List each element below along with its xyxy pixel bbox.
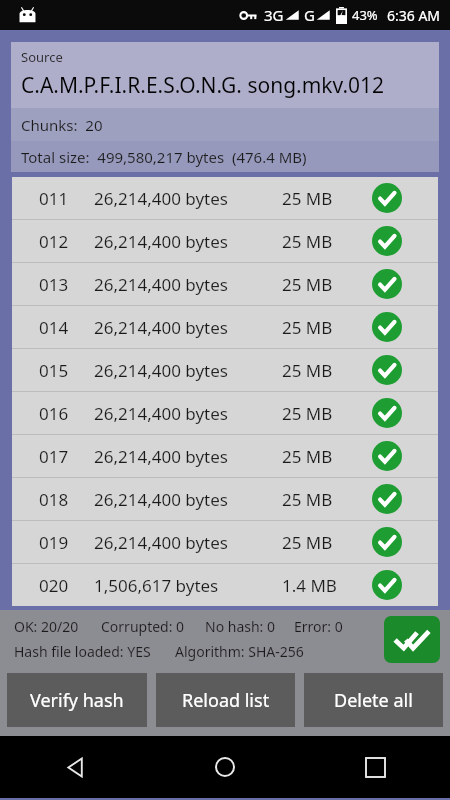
button[interactable]: 011 <box>12 177 438 219</box>
staticText: 25 MB <box>282 316 333 339</box>
staticText: 26,214,400 bytes <box>94 531 228 554</box>
button[interactable]: Delete all <box>304 673 443 727</box>
staticText: Algorithm: SHA-256 <box>175 642 304 661</box>
staticText: Delete all <box>334 688 413 713</box>
staticText: 017 <box>39 445 69 468</box>
staticText: Hash file loaded: YES <box>14 642 151 661</box>
button[interactable]: 018 <box>12 478 438 520</box>
staticText: 26,214,400 bytes <box>94 488 228 511</box>
staticText: 25 MB <box>282 273 333 296</box>
staticText: Error: 0 <box>294 617 343 636</box>
staticText: 020 <box>39 574 69 597</box>
staticText: Corrupted: 0 <box>101 617 185 636</box>
staticText: Source <box>21 48 63 66</box>
staticText: 25 MB <box>282 230 333 253</box>
button[interactable]: 013 <box>12 263 438 305</box>
staticText: Total size: 499,580,217 bytes (476.4 MB) <box>21 147 307 167</box>
staticText: 25 MB <box>282 359 333 382</box>
staticText: No hash: 0 <box>205 617 276 636</box>
staticText: 014 <box>39 316 69 339</box>
button[interactable]: 012 <box>12 220 438 262</box>
staticText: 26,214,400 bytes <box>94 445 228 468</box>
button[interactable]: Reload list <box>156 673 295 727</box>
staticText: 019 <box>39 531 69 554</box>
staticText: Reload list <box>182 688 270 713</box>
staticText: Verify hash <box>30 688 124 713</box>
staticText: 25 MB <box>282 402 333 425</box>
staticText: 018 <box>39 488 69 511</box>
staticText: 25 MB <box>282 445 333 468</box>
staticText: 011 <box>39 187 69 210</box>
staticText: 25 MB <box>282 531 333 554</box>
staticText: 26,214,400 bytes <box>94 316 228 339</box>
staticText: 012 <box>39 230 69 253</box>
button[interactable]: 015 <box>12 349 438 391</box>
staticText: 013 <box>39 273 69 296</box>
staticText: OK: 20/20 <box>14 617 79 636</box>
button[interactable]: Verify hash <box>7 673 147 727</box>
staticText: 25 MB <box>282 187 333 210</box>
staticText: G <box>304 5 315 25</box>
staticText: C.A.M.P.F.I.R.E.S.O.N.G. song.mkv.012 <box>21 71 385 100</box>
button[interactable]: Verify all chunks <box>384 616 440 663</box>
staticText: 25 MB <box>282 488 333 511</box>
staticText: 26,214,400 bytes <box>94 230 228 253</box>
staticText: 6:36 AM <box>387 6 441 25</box>
button[interactable]: 020 <box>12 564 438 606</box>
staticText: 1.4 MB <box>282 574 337 597</box>
button[interactable]: Home <box>150 736 300 798</box>
button[interactable]: 017 <box>12 435 438 477</box>
staticText: 26,214,400 bytes <box>94 187 228 210</box>
staticText: Chunks: 20 <box>21 115 103 135</box>
button[interactable]: 016 <box>12 392 438 434</box>
staticText: 016 <box>39 402 69 425</box>
staticText: 3G <box>264 5 284 25</box>
button[interactable]: 014 <box>12 306 438 348</box>
staticText: 1,506,617 bytes <box>94 574 219 597</box>
button[interactable]: 019 <box>12 521 438 563</box>
button[interactable]: Recents <box>300 736 450 798</box>
button[interactable]: Back <box>0 736 150 798</box>
staticText: 015 <box>39 359 69 382</box>
staticText: 43% <box>352 6 378 24</box>
staticText: 26,214,400 bytes <box>94 359 228 382</box>
staticText: 26,214,400 bytes <box>94 402 228 425</box>
staticText: 26,214,400 bytes <box>94 273 228 296</box>
